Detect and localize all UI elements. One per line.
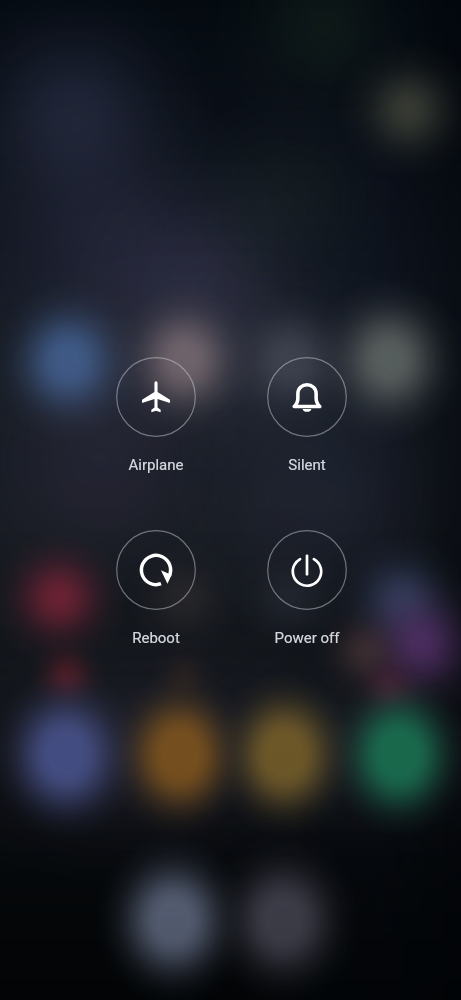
button[interactable]: Power off [259,530,355,647]
button[interactable]: Silent [259,357,355,474]
staticText: Power off [259,629,355,647]
staticText: Airplane [108,456,204,474]
button[interactable]: Reboot [108,530,204,647]
staticText: Reboot [108,629,204,647]
button[interactable]: Airplane [108,357,204,474]
staticText: Silent [259,456,355,474]
